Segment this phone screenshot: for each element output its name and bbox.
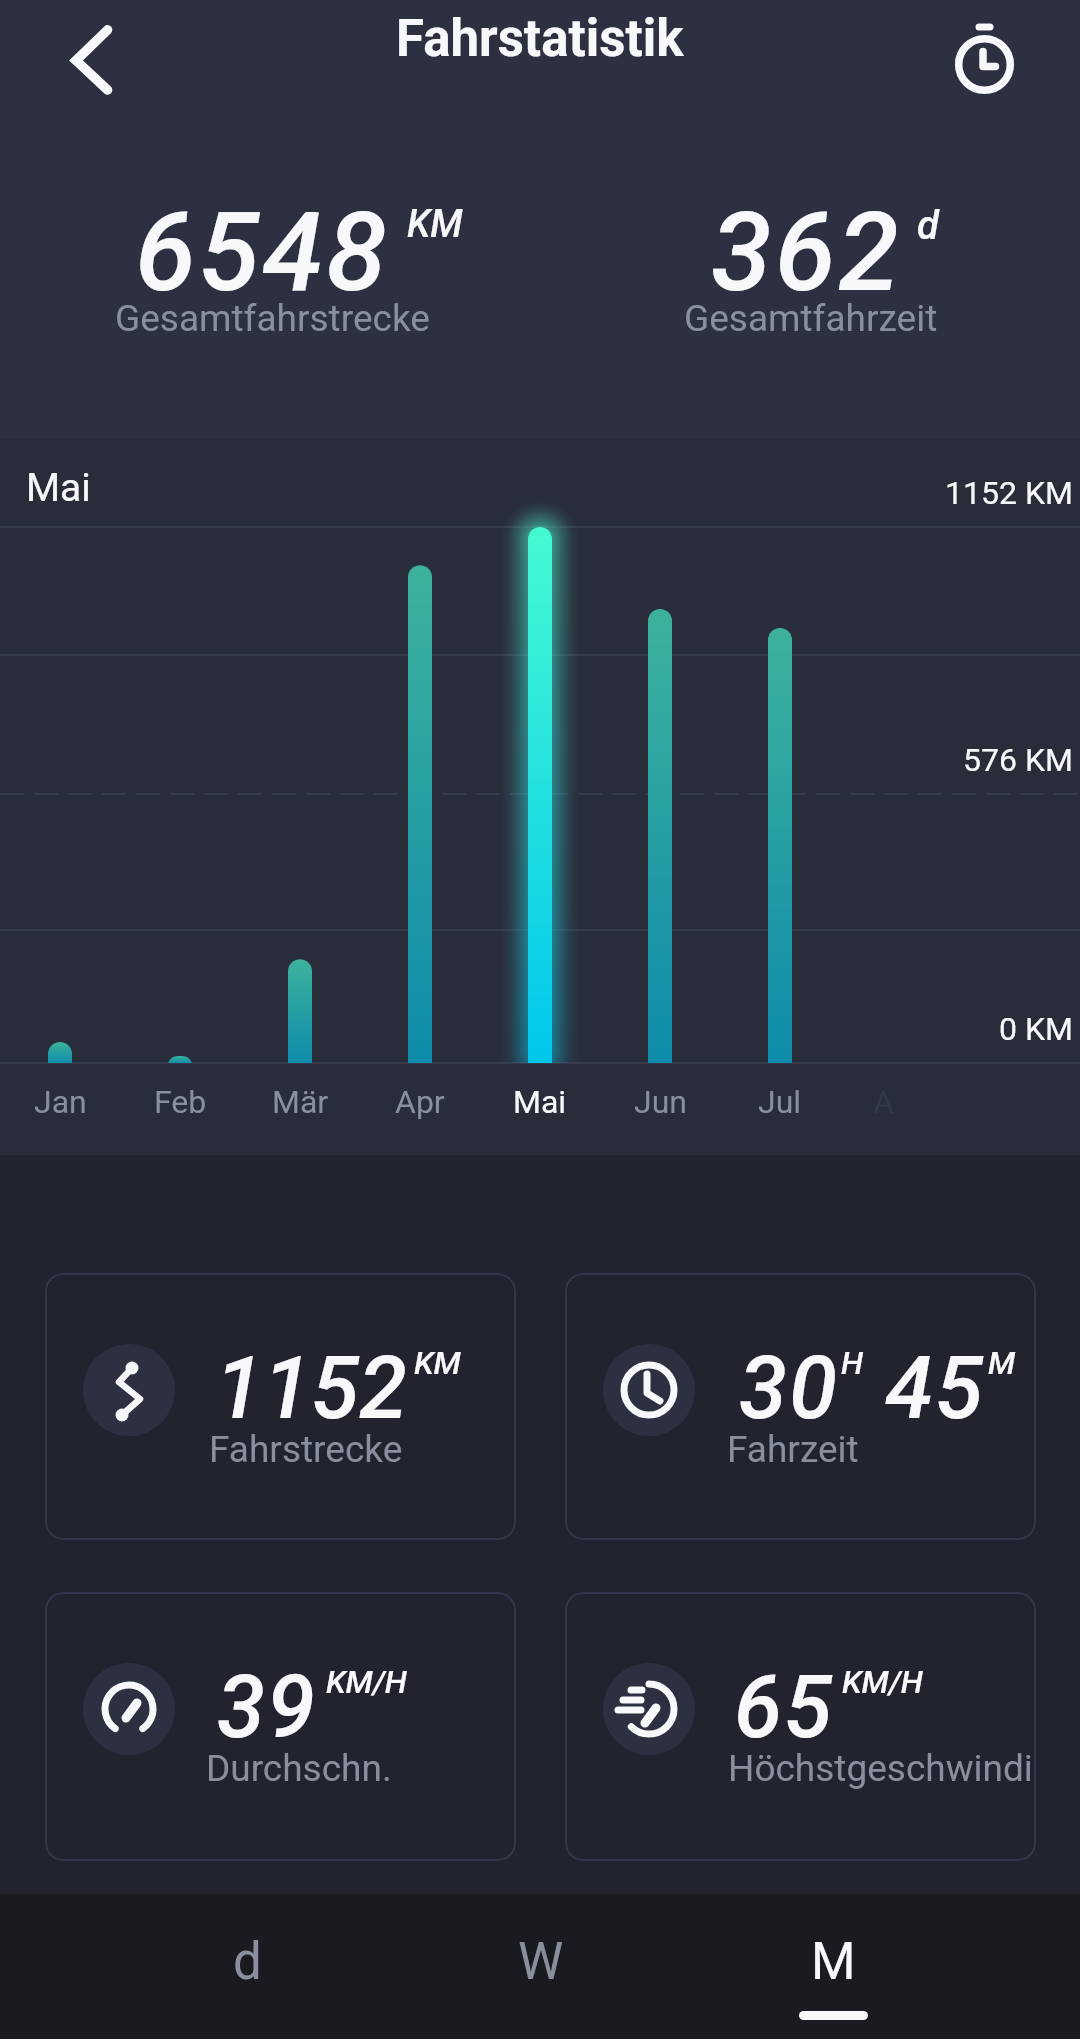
staticText: Feb: [154, 1083, 207, 1121]
button[interactable]: 65: [565, 1592, 1036, 1861]
button[interactable]: 39: [45, 1592, 516, 1861]
staticText: Mai: [513, 1083, 567, 1121]
staticText: Jan: [34, 1083, 87, 1121]
staticText: M: [988, 1344, 1016, 1382]
button[interactable]: W: [394, 1894, 687, 2039]
staticText: Fahrzeit: [727, 1428, 859, 1471]
staticText: Fahrstrecke: [209, 1428, 403, 1471]
staticText: Jul: [758, 1083, 802, 1121]
staticText: 30: [739, 1337, 839, 1439]
staticText: KM/H: [842, 1663, 923, 1701]
staticText: 1152: [215, 1337, 407, 1439]
staticText: Gesamtfahrzeit: [684, 297, 938, 340]
staticText: Gesamtfahrstrecke: [115, 297, 430, 340]
button[interactable]: M: [687, 1894, 980, 2039]
staticText: 65: [734, 1656, 834, 1758]
staticText: 6548: [135, 188, 390, 317]
staticText: 1152 KM: [945, 474, 1073, 512]
staticText: Durchschn.: [206, 1747, 392, 1790]
staticText: W: [518, 1932, 564, 1992]
staticText: 45: [885, 1337, 985, 1439]
staticText: Höchstgeschwindi: [728, 1747, 1033, 1790]
staticText: A: [873, 1083, 894, 1121]
staticText: 39: [217, 1656, 317, 1758]
button[interactable]: Stopwatch: [930, 8, 1034, 112]
staticText: d: [917, 202, 939, 249]
staticText: Mai: [26, 465, 91, 511]
staticText: 576 KM: [963, 741, 1073, 779]
button[interactable]: Back: [28, 8, 132, 112]
staticText: 0 KM: [999, 1010, 1073, 1048]
staticText: Apr: [395, 1083, 445, 1121]
staticText: H: [841, 1344, 864, 1382]
staticText: KM/H: [326, 1663, 407, 1701]
staticText: Jun: [634, 1083, 687, 1121]
staticText: 362: [711, 188, 902, 317]
staticText: KM: [414, 1344, 461, 1382]
button[interactable]: d: [100, 1894, 394, 2039]
staticText: Fahrstatistik: [396, 9, 684, 69]
button[interactable]: 30: [565, 1273, 1036, 1540]
staticText: d: [233, 1932, 262, 1992]
staticText: Mär: [272, 1083, 329, 1121]
staticText: KM: [407, 202, 463, 247]
staticText: M: [811, 1932, 856, 1992]
button[interactable]: 1152: [45, 1273, 516, 1540]
